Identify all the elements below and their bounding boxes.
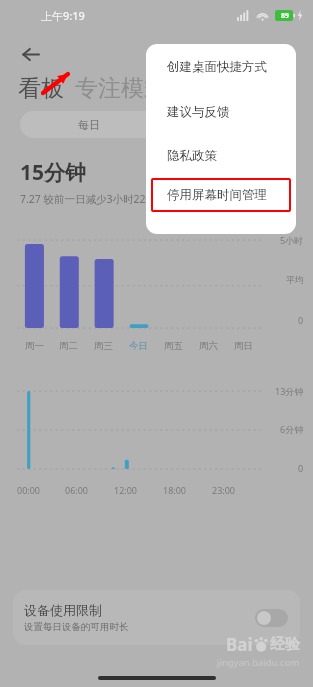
staticText: 周六 — [199, 340, 218, 352]
staticText: 0 — [298, 314, 304, 326]
staticText: 每日 — [78, 118, 100, 132]
staticText: 今日 — [129, 340, 148, 352]
staticText: 周二 — [59, 340, 78, 352]
staticText: 平均 — [286, 274, 304, 285]
staticText: 建议与反馈 — [167, 104, 230, 120]
staticText: 18:00 — [163, 484, 187, 496]
button[interactable]: 专注模式 — [75, 74, 167, 103]
staticText: 上午9:19 — [41, 8, 85, 23]
staticText: 设备使用限制 — [24, 602, 102, 618]
staticText: 经验 — [270, 635, 300, 654]
staticText: 5小时 — [280, 234, 304, 246]
staticText: 停用屏幕时间管理 — [167, 187, 267, 203]
staticText: Bai — [226, 633, 253, 656]
staticText: 06:00 — [65, 484, 89, 496]
staticText: 23:00 — [212, 484, 236, 496]
button[interactable]: 隐私政策 — [146, 134, 296, 178]
staticText: 周三 — [94, 340, 113, 352]
staticText: 15分钟 — [20, 158, 87, 187]
staticText: 隐私政策 — [167, 148, 217, 164]
staticText: 89 — [281, 11, 290, 21]
button[interactable]: 设备使用限制 — [13, 590, 300, 645]
staticText: 设置每日设备的可用时长 — [24, 621, 129, 633]
button[interactable]: Back — [14, 38, 46, 70]
staticText: 00:00 — [17, 484, 41, 496]
staticText: 12:00 — [114, 484, 138, 496]
button[interactable]: 看板 — [18, 74, 64, 103]
staticText: 13分钟 — [275, 385, 304, 397]
staticText: 创建桌面快捷方式 — [167, 59, 267, 75]
staticText: 0 — [298, 462, 304, 474]
staticText: jingyan.baidu.com — [217, 656, 300, 669]
button[interactable]: 停用屏幕时间管理 — [151, 178, 291, 212]
staticText: 6分钟 — [280, 423, 304, 435]
staticText: 7.27 较前一日减少3小时22分钟 — [20, 192, 167, 206]
button[interactable]: 创建桌面快捷方式 — [146, 44, 296, 90]
button[interactable]: 建议与反馈 — [146, 90, 296, 134]
staticText: 周日 — [234, 340, 253, 352]
button[interactable]: 每日 — [20, 111, 260, 138]
staticText: 周五 — [164, 340, 183, 352]
button[interactable]: Toggle device usage limit — [255, 609, 288, 627]
staticText: 周一 — [25, 340, 44, 352]
